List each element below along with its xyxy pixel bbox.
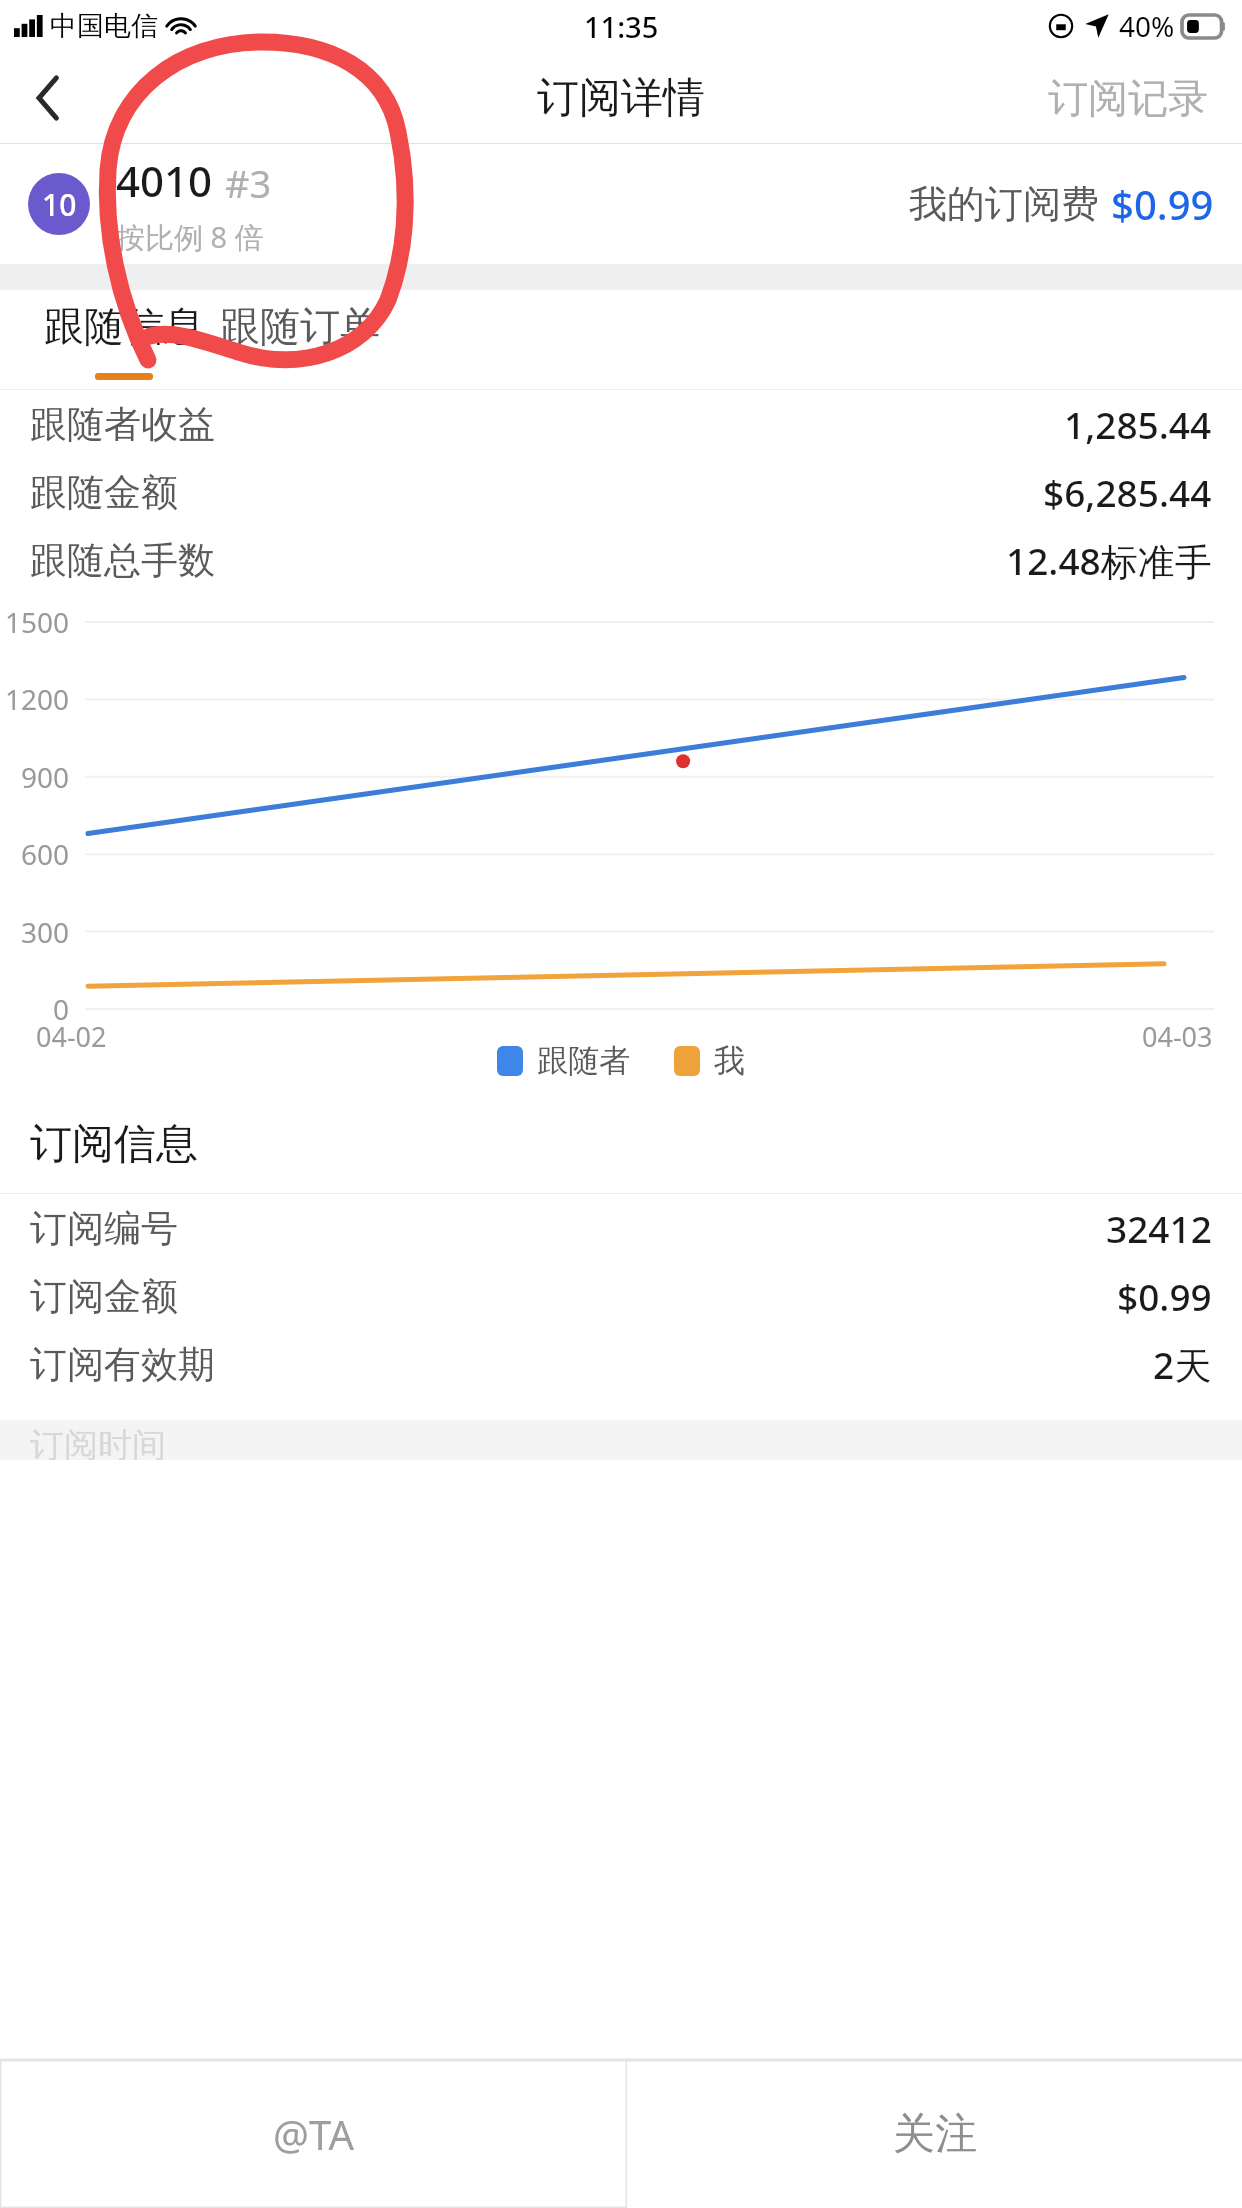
staticText: 跟随总手数: [30, 537, 215, 584]
staticText: 900: [21, 758, 70, 796]
staticText: 订阅金额: [30, 1273, 178, 1320]
staticText: 40%: [1119, 7, 1175, 45]
staticText: 订阅记录: [1048, 73, 1208, 123]
staticText: 订阅有效期: [30, 1341, 215, 1388]
staticText: 300: [21, 913, 70, 951]
button[interactable]: 订阅金额: [0, 1262, 1242, 1330]
staticText: 1500: [5, 603, 70, 641]
staticText: 1,285.44: [1064, 399, 1212, 449]
staticText: 关注: [893, 2108, 977, 2161]
button[interactable]: 订阅记录: [1048, 52, 1242, 144]
button[interactable]: 跟随者收益: [0, 390, 1242, 458]
staticText: 04-03: [1142, 1018, 1213, 1055]
staticText: 跟随者: [537, 1041, 630, 1080]
button[interactable]: 跟随金额: [0, 458, 1242, 526]
staticText: @TA: [273, 2107, 354, 2161]
staticText: 32412: [1106, 1203, 1212, 1253]
staticText: $0.99: [1117, 1271, 1212, 1321]
staticText: 按比例 8 倍: [116, 217, 264, 257]
staticText: 跟随金额: [30, 469, 178, 516]
staticText: 4010: [116, 152, 213, 209]
staticText: 12.48标准手: [1006, 535, 1212, 586]
staticText: 订阅信息: [30, 1118, 198, 1171]
staticText: 我的订阅费: [909, 180, 1099, 228]
staticText: 跟随订单: [220, 301, 380, 351]
staticText: 11:35: [584, 7, 659, 46]
button[interactable]: 跟随总手数: [0, 526, 1242, 594]
staticText: 1200: [5, 680, 70, 718]
staticText: #3: [225, 157, 272, 209]
button[interactable]: 订阅有效期: [0, 1330, 1242, 1398]
button[interactable]: 跟随订单: [220, 301, 380, 380]
staticText: 订阅详情: [537, 72, 705, 125]
staticText: 0: [53, 990, 70, 1028]
staticText: 订阅时间: [30, 1424, 166, 1460]
button[interactable]: 10: [0, 144, 1242, 264]
staticText: 跟随信息: [44, 301, 204, 351]
staticText: $0.99: [1111, 177, 1214, 231]
staticText: 04-02: [36, 1018, 107, 1055]
staticText: 600: [21, 835, 70, 873]
staticText: 2天: [1153, 1339, 1212, 1390]
staticText: 我: [714, 1041, 745, 1080]
button[interactable]: @TA: [0, 2060, 627, 2208]
button[interactable]: 订阅编号: [0, 1194, 1242, 1262]
button[interactable]: 关注: [627, 2060, 1242, 2208]
staticText: 中国电信: [50, 9, 158, 43]
button[interactable]: 跟随信息: [44, 301, 204, 380]
staticText: 10: [42, 184, 77, 225]
button[interactable]: Back: [0, 52, 96, 144]
staticText: $6,285.44: [1043, 467, 1212, 517]
staticText: 跟随者收益: [30, 401, 215, 448]
staticText: 订阅编号: [30, 1205, 178, 1252]
